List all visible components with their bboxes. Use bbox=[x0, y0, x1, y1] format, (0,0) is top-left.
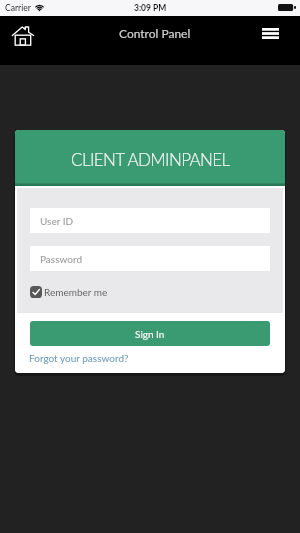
staticText: Password bbox=[40, 253, 82, 265]
staticText: Sign In bbox=[135, 328, 165, 340]
button[interactable]: Home bbox=[5, 17, 41, 53]
staticText: 3:09 PM bbox=[134, 3, 167, 13]
staticText: CLIENT ADMINPANEL bbox=[71, 149, 230, 169]
staticText: Carrier bbox=[5, 3, 31, 13]
button[interactable]: Sign In bbox=[30, 321, 270, 346]
button[interactable]: User ID bbox=[40, 208, 270, 233]
staticText: Control Panel bbox=[119, 26, 191, 40]
button[interactable]: Menu bbox=[262, 28, 279, 39]
button[interactable]: Remember me bbox=[30, 286, 108, 298]
button[interactable]: Forgot your password? bbox=[29, 352, 129, 364]
staticText: User ID bbox=[40, 215, 74, 227]
staticText: Remember me bbox=[44, 286, 108, 298]
button[interactable]: Password bbox=[40, 246, 270, 271]
